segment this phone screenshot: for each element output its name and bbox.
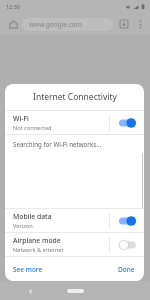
button[interactable]: Airplane mode toggle	[110, 233, 144, 256]
button[interactable]: www.google.com	[22, 18, 113, 31]
staticText: Verizon	[13, 222, 33, 230]
staticText: See more	[13, 265, 43, 274]
button[interactable]: Airplane mode	[5, 233, 144, 256]
button[interactable]: More options	[132, 16, 148, 32]
button[interactable]: Home	[60, 285, 90, 297]
staticText: Network & internet	[13, 246, 64, 254]
staticText: 12:30	[6, 3, 21, 10]
staticText: Airplane mode	[13, 236, 61, 245]
staticText: Internet Connectivity	[33, 91, 117, 103]
staticText: Wi-Fi	[13, 114, 29, 123]
button[interactable]: Back	[24, 285, 36, 297]
button[interactable]: Home	[4, 15, 22, 33]
button[interactable]: Mobile data toggle	[110, 209, 144, 232]
button[interactable]: Downloads	[116, 16, 132, 32]
staticText: Not connected	[13, 124, 52, 132]
button[interactable]: Wi-Fi toggle	[110, 111, 144, 134]
button[interactable]: Mobile data	[5, 209, 144, 232]
staticText: Done	[118, 265, 135, 274]
button[interactable]: Done	[114, 262, 139, 277]
button[interactable]: See more	[9, 262, 47, 277]
staticText: www.google.com	[29, 20, 82, 29]
staticText: Mobile data	[13, 212, 52, 221]
button[interactable]: Wi-Fi	[5, 111, 144, 134]
staticText: Searching for Wi-Fi networks...	[13, 140, 102, 148]
